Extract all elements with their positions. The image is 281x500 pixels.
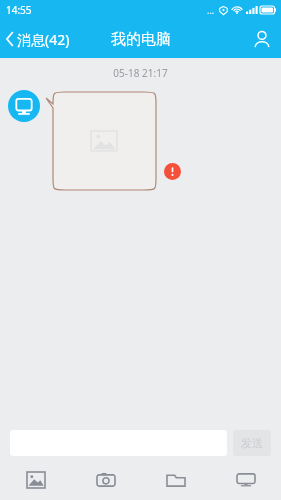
staticText: ... bbox=[207, 4, 215, 16]
staticText: 消息(42) bbox=[17, 30, 70, 49]
staticText: 05-18 21:17 bbox=[0, 66, 281, 80]
button[interactable]: Files bbox=[141, 464, 211, 496]
button[interactable] bbox=[46, 92, 156, 190]
staticText: 我的电脑 bbox=[111, 30, 171, 49]
button[interactable]: Profile bbox=[243, 20, 281, 58]
button[interactable]: 发送 bbox=[233, 430, 271, 456]
button[interactable]: 消息(42) bbox=[0, 20, 78, 58]
button[interactable]: Screen bbox=[211, 464, 281, 496]
button[interactable]: Camera bbox=[71, 464, 141, 496]
button[interactable]: Avatar bbox=[8, 90, 40, 122]
staticText: 发送 bbox=[241, 436, 263, 450]
button[interactable]: Send failed, retry bbox=[164, 163, 181, 180]
staticText: 14:55 bbox=[6, 3, 32, 17]
button[interactable]: Photo bbox=[0, 464, 71, 496]
